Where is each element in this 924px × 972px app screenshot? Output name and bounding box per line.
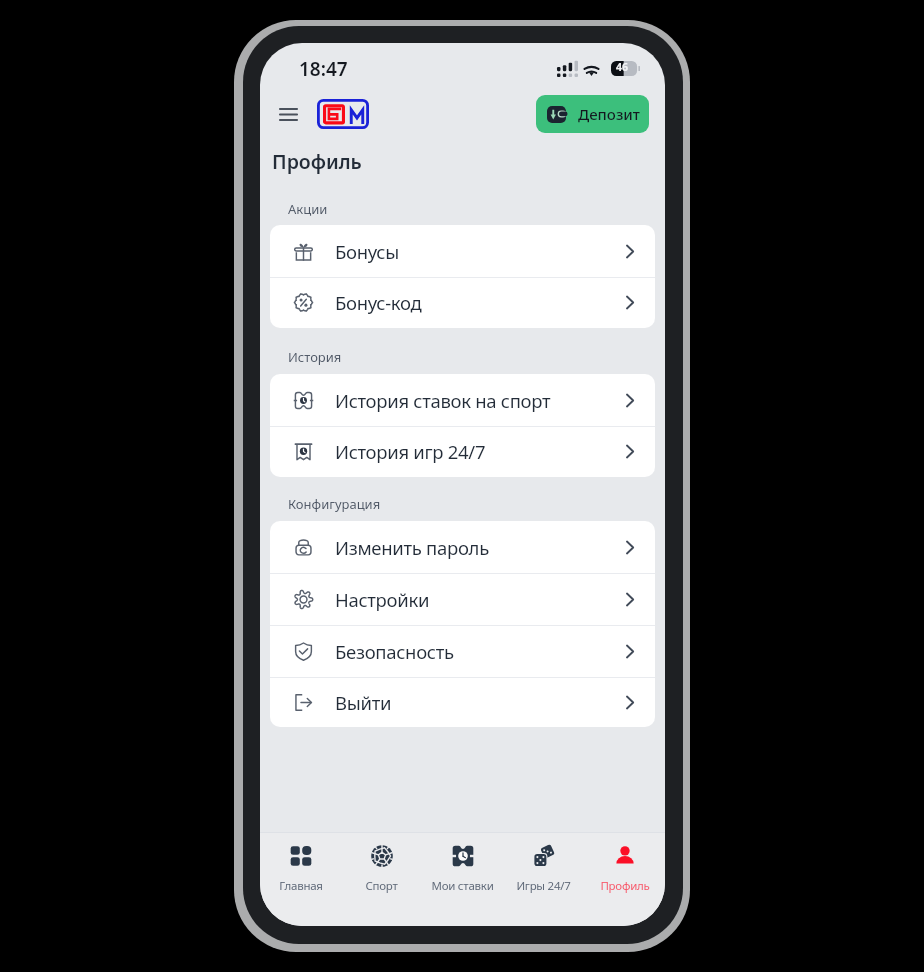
staticText: Профиль — [272, 148, 362, 175]
staticText: 18:47 — [299, 56, 348, 82]
staticText: Безопасность — [335, 639, 454, 664]
button[interactable]: История игр 24/7 — [270, 426, 655, 477]
button[interactable]: Изменить пароль — [270, 521, 655, 573]
staticText: Спорт — [365, 878, 398, 894]
staticText: История — [288, 348, 342, 366]
button[interactable]: Выйти — [270, 677, 655, 727]
staticText: Конфигурация — [288, 495, 381, 513]
button[interactable]: BM logo — [317, 99, 369, 129]
staticText: Настройки — [335, 587, 430, 612]
staticText: История ставок на спорт — [335, 388, 551, 413]
staticText: Мои ставки — [431, 878, 494, 894]
staticText: Игры 24/7 — [516, 878, 571, 894]
button[interactable]: История ставок на спорт — [270, 374, 655, 426]
staticText: Изменить пароль — [335, 535, 489, 560]
staticText: 46 — [616, 60, 629, 74]
button[interactable]: Бонусы — [270, 225, 655, 277]
button[interactable]: Menu — [270, 96, 306, 132]
staticText: Главная — [279, 878, 323, 894]
button[interactable]: Спорт — [341, 832, 422, 926]
button[interactable]: Игры 24/7 — [503, 832, 584, 926]
button[interactable]: Депозит — [536, 95, 649, 133]
staticText: История игр 24/7 — [335, 439, 486, 464]
button[interactable]: Настройки — [270, 573, 655, 625]
button[interactable]: Главная — [260, 832, 341, 926]
button[interactable]: Бонус-код — [270, 277, 655, 328]
button[interactable]: Безопасность — [270, 625, 655, 677]
staticText: Выйти — [335, 690, 392, 715]
staticText: Бонусы — [335, 239, 399, 264]
button[interactable]: Профиль — [584, 832, 665, 926]
staticText: Депозит — [578, 104, 641, 124]
button[interactable]: Мои ставки — [422, 832, 503, 926]
staticText: Бонус-код — [335, 290, 422, 315]
staticText: Профиль — [600, 878, 650, 894]
staticText: Акции — [288, 200, 328, 218]
